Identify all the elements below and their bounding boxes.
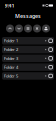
button[interactable]: More [24, 24, 32, 32]
staticText: Folder 2 [4, 47, 18, 52]
button[interactable]: Folder 3 [2, 55, 54, 62]
staticText: Folder 1 [4, 38, 18, 43]
button[interactable]: Folder 1 [2, 37, 54, 44]
button[interactable]: Folder 4 [2, 63, 54, 71]
staticText: Folder 3 [4, 56, 18, 61]
button[interactable]: Scroll up [6, 24, 14, 32]
button[interactable]: Scroll down [15, 24, 23, 32]
button[interactable]: Profile [42, 24, 50, 32]
button[interactable]: Folder 5 [2, 72, 54, 80]
staticText: 9:41 [4, 2, 14, 9]
button[interactable]: Close [33, 24, 41, 32]
staticText: Messages [15, 12, 41, 20]
staticText: Folder 5 [4, 73, 18, 79]
staticText: Folder 4 [4, 64, 18, 70]
button[interactable]: Folder 2 [2, 46, 54, 53]
